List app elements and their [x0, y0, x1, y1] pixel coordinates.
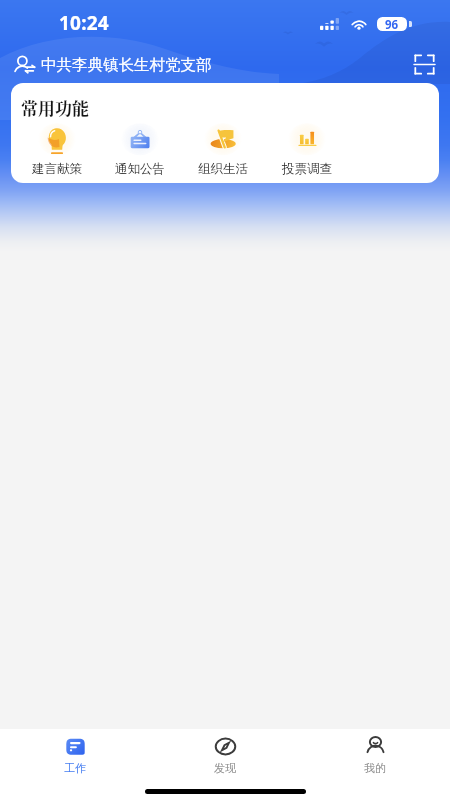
button[interactable]: 我的 — [300, 729, 450, 781]
button[interactable]: 投票调查 — [275, 121, 339, 177]
button[interactable]: 工作 — [0, 729, 150, 781]
staticText: 中共李典镇长生村党支部 — [41, 55, 212, 75]
staticText: 发现 — [214, 761, 236, 775]
button[interactable]: 通知公告 — [108, 121, 172, 177]
button[interactable]: 建言献策 — [25, 121, 89, 177]
staticText: 组织生活 — [198, 161, 248, 177]
button[interactable]: 发现 — [150, 729, 300, 781]
staticText: 常用功能 — [21, 95, 89, 119]
staticText: 96 — [385, 17, 399, 31]
button[interactable]: 中共李典镇长生村党支部 — [14, 50, 216, 79]
staticText: 投票调查 — [282, 161, 332, 177]
button[interactable]: Scan QR code — [407, 47, 441, 81]
staticText: 10:24 — [59, 10, 109, 36]
button[interactable]: 组织生活 — [191, 121, 255, 177]
staticText: 建言献策 — [32, 161, 82, 177]
staticText: 我的 — [364, 761, 386, 775]
staticText: 工作 — [64, 761, 86, 775]
staticText: 通知公告 — [115, 161, 165, 177]
